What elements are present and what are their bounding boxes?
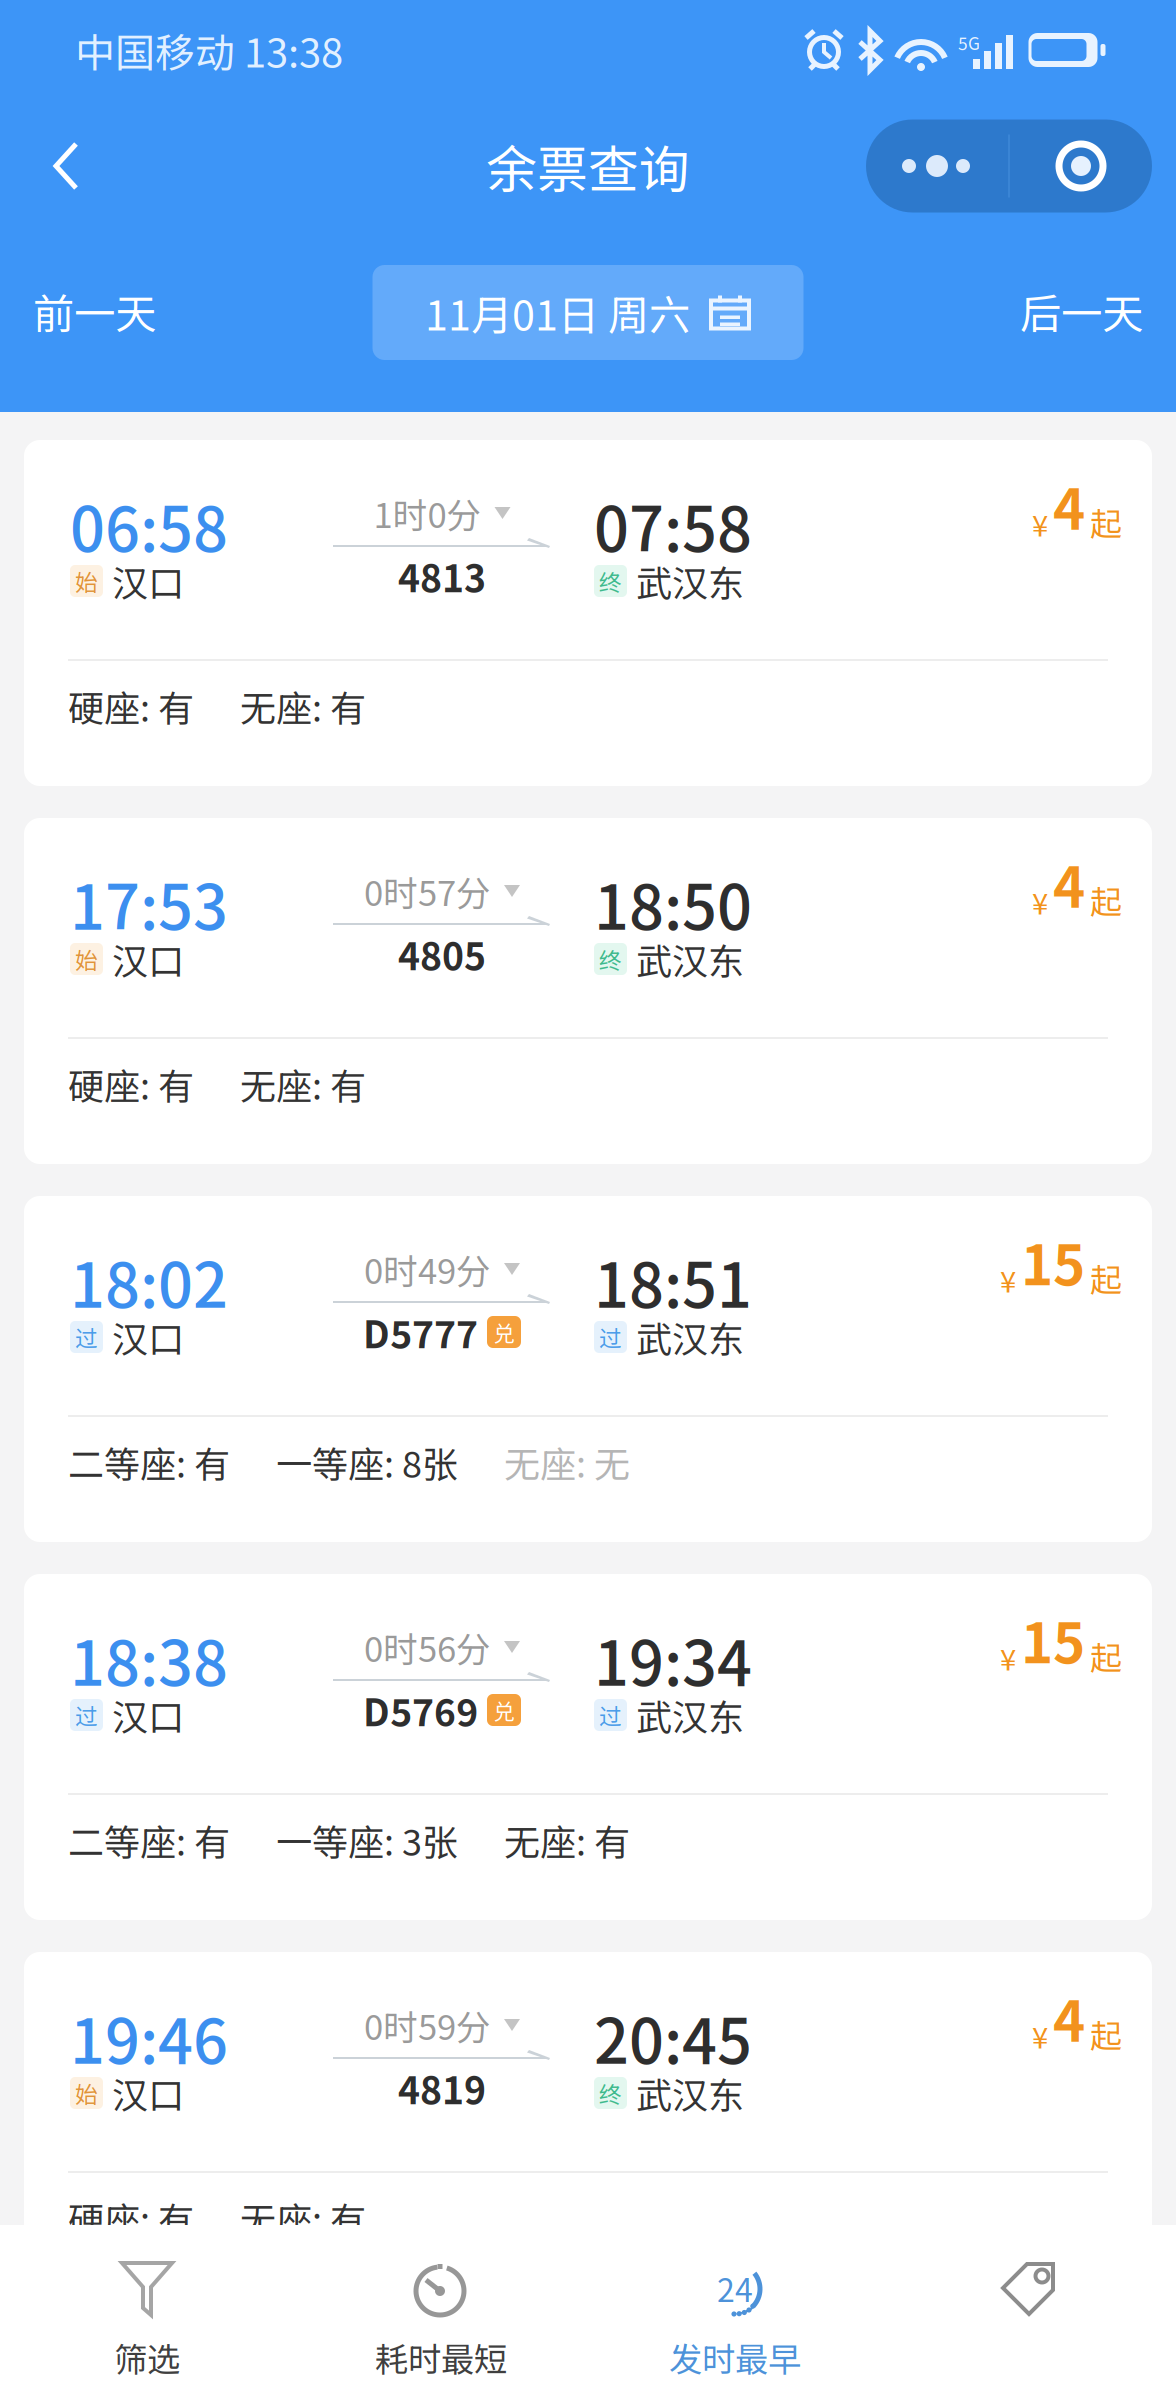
staticText: 起: [1090, 2011, 1122, 2057]
staticText: 4: [1053, 1978, 1085, 2057]
staticText: 筛选: [114, 2333, 180, 2381]
staticText: ¥: [1000, 1258, 1016, 1301]
button[interactable]: 返回: [16, 116, 116, 216]
button[interactable]: 17:53: [24, 818, 1152, 1164]
staticText: 终: [599, 565, 622, 597]
staticText: 过: [75, 1321, 98, 1353]
staticText: 11月01日 周六: [425, 283, 690, 342]
staticText: 兑: [493, 1317, 514, 1347]
staticText: 前一天: [33, 281, 156, 341]
staticText: 武汉东: [636, 1311, 744, 1363]
button[interactable]: 18:38: [24, 1574, 1152, 1920]
staticText: 武汉东: [636, 2067, 744, 2119]
button[interactable]: 筛选: [0, 2225, 294, 2400]
staticText: 0时57分: [364, 866, 491, 916]
button[interactable]: 19:46: [24, 1952, 1152, 2298]
staticText: 20:45: [594, 1993, 752, 2081]
staticText: 无座: 无: [504, 1436, 630, 1488]
staticText: 15: [1021, 1600, 1085, 1679]
staticText: 17:53: [70, 859, 228, 947]
staticText: 15: [1021, 1222, 1085, 1301]
staticText: 18:38: [70, 1615, 228, 1703]
staticText: 4: [1053, 844, 1085, 923]
staticText: 过: [599, 1699, 622, 1731]
staticText: 4819: [398, 2061, 486, 2115]
staticText: 汉口: [112, 1311, 184, 1363]
staticText: 起: [1090, 1633, 1122, 1679]
staticText: 硬座: 有: [68, 2192, 194, 2244]
staticText: 二等座: 有: [68, 1814, 230, 1866]
staticText: 5G: [958, 30, 980, 55]
button[interactable]: 更多: [866, 119, 1152, 212]
staticText: 无座: 有: [504, 1814, 630, 1866]
staticText: 终: [599, 943, 622, 975]
staticText: 兑: [493, 1695, 514, 1725]
staticText: ¥: [1032, 2014, 1048, 2057]
staticText: 始: [75, 943, 98, 975]
staticText: 中国移动 13:38: [75, 21, 343, 79]
staticText: 硬座: 有: [68, 1058, 194, 1110]
staticText: 4: [1053, 466, 1085, 545]
staticText: 起: [1090, 499, 1122, 545]
staticText: 汉口: [112, 555, 184, 607]
staticText: 一等座: 3张: [276, 1814, 458, 1866]
staticText: 汉口: [112, 1689, 184, 1741]
staticText: 后一天: [1020, 281, 1143, 341]
button[interactable]: 18:02: [24, 1196, 1152, 1542]
button[interactable]: 前一天: [0, 263, 280, 359]
staticText: 终: [599, 2077, 622, 2109]
staticText: 过: [599, 1321, 622, 1353]
staticText: 无座: 有: [240, 680, 366, 732]
staticText: 0时56分: [364, 1622, 491, 1672]
staticText: ¥: [1032, 880, 1048, 923]
staticText: 武汉东: [636, 555, 744, 607]
staticText: D5769: [363, 1683, 478, 1737]
staticText: 起: [1090, 1255, 1122, 1301]
staticText: 1时0分: [373, 488, 481, 538]
staticText: 0时49分: [364, 1244, 491, 1294]
staticText: 07:58: [594, 481, 752, 569]
staticText: 硬座: 有: [68, 680, 194, 732]
staticText: 耗时最短: [375, 2333, 507, 2381]
staticText: 余票查询: [486, 129, 690, 203]
staticText: 18:50: [594, 859, 752, 947]
staticText: 始: [75, 565, 98, 597]
staticText: 24: [717, 2265, 753, 2311]
staticText: 06:58: [70, 481, 228, 569]
staticText: ¥: [1000, 1636, 1016, 1679]
staticText: 二等座: 有: [68, 1436, 230, 1488]
button[interactable]: 11月01日 周六: [372, 265, 803, 360]
button[interactable]: 后一天: [896, 263, 1176, 359]
button[interactable]: 耗时最短: [294, 2225, 588, 2400]
staticText: 汉口: [112, 2067, 184, 2119]
staticText: 武汉东: [636, 1689, 744, 1741]
staticText: 18:51: [594, 1237, 752, 1325]
staticText: 一等座: 8张: [276, 1436, 458, 1488]
staticText: 19:46: [70, 1993, 228, 2081]
staticText: 起: [1090, 877, 1122, 923]
staticText: 18:02: [70, 1237, 228, 1325]
button[interactable]: 价格: [882, 2225, 1176, 2400]
staticText: 无座: 有: [240, 1058, 366, 1110]
staticText: 始: [75, 2077, 98, 2109]
staticText: 19:34: [594, 1615, 752, 1703]
staticText: 4805: [398, 927, 486, 981]
staticText: 无座: 有: [240, 2192, 366, 2244]
staticText: 4813: [398, 549, 486, 603]
staticText: 过: [75, 1699, 98, 1731]
button[interactable]: 06:58: [24, 440, 1152, 786]
staticText: 汉口: [112, 933, 184, 985]
staticText: ¥: [1032, 502, 1048, 545]
staticText: 武汉东: [636, 933, 744, 985]
staticText: 0时59分: [364, 2000, 491, 2050]
staticText: D5777: [363, 1305, 478, 1359]
button[interactable]: 发时最早: [588, 2225, 882, 2400]
staticText: 发时最早: [669, 2333, 801, 2381]
